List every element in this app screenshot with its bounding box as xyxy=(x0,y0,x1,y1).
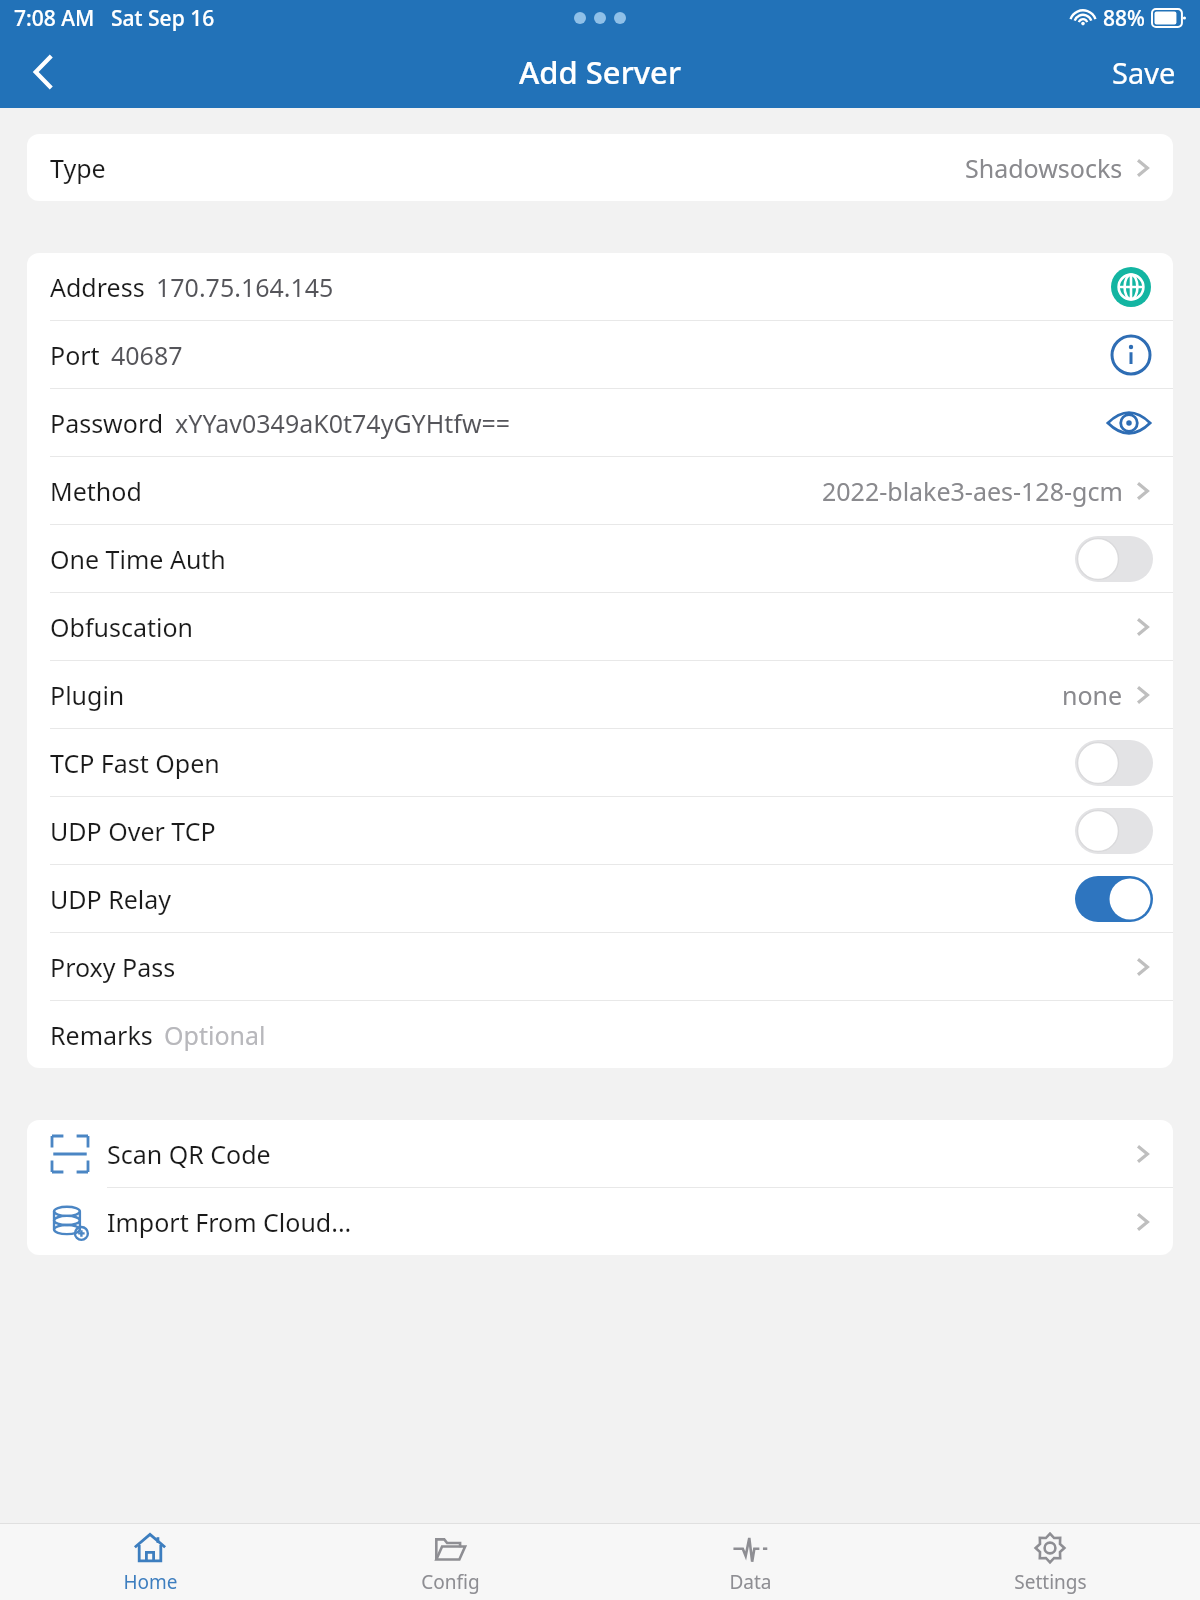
staticText: UDP Over TCP xyxy=(50,814,216,848)
staticText: Config xyxy=(421,1569,480,1595)
staticText: Obfuscation xyxy=(50,610,194,644)
button[interactable]: Address xyxy=(27,253,1173,320)
staticText: Data xyxy=(729,1569,772,1595)
button[interactable]: UDP Relay xyxy=(27,865,1173,932)
button[interactable]: Type xyxy=(27,134,1173,201)
button[interactable]: Password xyxy=(27,389,1173,456)
button[interactable]: Info xyxy=(1109,333,1153,377)
staticText: One Time Auth xyxy=(50,542,226,576)
button[interactable]: Config xyxy=(300,1530,600,1595)
button[interactable]: One Time Auth xyxy=(27,525,1173,592)
button[interactable]: Scan QR Code xyxy=(27,1120,1173,1187)
staticText: Home xyxy=(123,1569,178,1595)
staticText: Import From Cloud... xyxy=(107,1205,352,1239)
staticText: 170.75.164.145 xyxy=(156,270,334,304)
button[interactable]: Method xyxy=(27,457,1173,524)
button[interactable]: Plugin xyxy=(27,661,1173,728)
staticText: Scan QR Code xyxy=(107,1137,271,1171)
button[interactable]: Remarks xyxy=(27,1001,1173,1068)
button[interactable]: Data xyxy=(600,1530,900,1595)
staticText: Sat Sep 16 xyxy=(111,4,215,33)
button[interactable]: Port xyxy=(27,321,1173,388)
staticText: Proxy Pass xyxy=(50,950,176,984)
staticText: Address xyxy=(50,270,145,304)
staticText: 2022-blake3-aes-128-gcm xyxy=(822,474,1123,508)
staticText: Password xyxy=(50,406,164,440)
staticText: Method xyxy=(50,474,142,508)
staticText: xYYav0349aK0t74yGYHtfw== xyxy=(175,406,511,440)
button[interactable]: Obfuscation xyxy=(27,593,1173,660)
button[interactable]: TCP Fast Open xyxy=(27,729,1173,796)
staticText: Shadowsocks xyxy=(965,151,1123,185)
staticText: Settings xyxy=(1014,1569,1087,1595)
staticText: Add Server xyxy=(519,51,682,93)
staticText: Optional xyxy=(164,1018,266,1052)
button[interactable]: Globe xyxy=(1109,265,1153,309)
button[interactable]: Back xyxy=(18,46,70,98)
staticText: UDP Relay xyxy=(50,882,172,916)
staticText: 88% xyxy=(1103,4,1145,33)
staticText: none xyxy=(1062,678,1123,712)
button[interactable]: Home xyxy=(0,1530,300,1595)
button[interactable]: Settings xyxy=(900,1530,1200,1595)
staticText: 40687 xyxy=(111,338,183,372)
staticText: Port xyxy=(50,338,100,372)
button[interactable]: Import From Cloud... xyxy=(27,1188,1173,1255)
staticText: Plugin xyxy=(50,678,125,712)
staticText: Save xyxy=(1112,53,1176,92)
staticText: TCP Fast Open xyxy=(50,746,220,780)
staticText: Type xyxy=(50,151,106,185)
button[interactable]: Proxy Pass xyxy=(27,933,1173,1000)
staticText: Remarks xyxy=(50,1018,153,1052)
button[interactable]: Save xyxy=(1112,53,1176,92)
staticText: 7:08 AM xyxy=(14,4,95,33)
button[interactable]: Show password xyxy=(1105,399,1153,447)
button[interactable]: UDP Over TCP xyxy=(27,797,1173,864)
